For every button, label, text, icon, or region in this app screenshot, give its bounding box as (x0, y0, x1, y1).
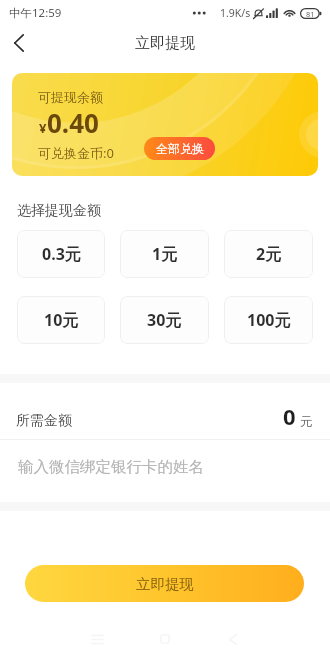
staticText: 立即提现 (135, 34, 195, 53)
staticText: 可提现余额 (38, 89, 103, 105)
staticText: 输入微信绑定银行卡的姓名 (18, 457, 204, 477)
staticText: ¥ (39, 119, 47, 137)
staticText: 0 (283, 401, 296, 431)
button[interactable]: 100元 (224, 296, 313, 344)
button[interactable]: Back (0, 26, 38, 60)
staticText: 选择提现金额 (17, 202, 101, 220)
staticText: 100元 (247, 309, 291, 331)
button[interactable]: 0.3元 (17, 230, 105, 278)
staticText: 立即提现 (136, 575, 194, 593)
staticText: 1.9K/s (220, 6, 251, 20)
button[interactable]: 2元 (224, 230, 313, 278)
button[interactable]: 30元 (120, 296, 209, 344)
button[interactable]: 全部兑换 (144, 137, 215, 160)
staticText: 1元 (152, 243, 178, 265)
button[interactable]: 10元 (17, 296, 105, 344)
staticText: 0.3元 (42, 243, 81, 265)
staticText: 中午12:59 (9, 5, 62, 21)
staticText: 10元 (44, 309, 79, 331)
staticText: 所需金额 (16, 412, 72, 430)
staticText: 元 (300, 414, 313, 430)
button[interactable]: 1元 (120, 230, 209, 278)
staticText: 81 (306, 9, 315, 19)
button[interactable]: 立即提现 (25, 565, 304, 602)
button[interactable]: 输入微信绑定银行卡的姓名 (0, 440, 330, 502)
staticText: 30元 (147, 309, 182, 331)
staticText: 可兑换金币:0 (38, 144, 114, 162)
staticText: 2元 (256, 243, 282, 265)
staticText: 0.40 (47, 105, 99, 140)
staticText: 全部兑换 (156, 141, 204, 156)
